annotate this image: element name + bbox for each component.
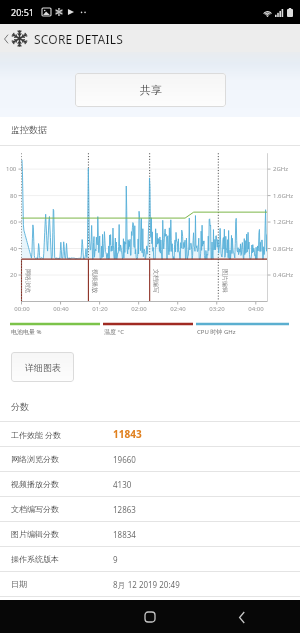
staticText: 00:40 — [53, 305, 69, 313]
staticText: 2GHz — [273, 165, 289, 173]
staticText: 00:00 — [14, 305, 30, 313]
staticText: 19660 — [113, 454, 136, 465]
staticText: 详细图表 — [25, 362, 61, 373]
staticText: 4130 — [113, 479, 132, 490]
button[interactable]: 工作效能 分数 — [0, 422, 300, 447]
staticText: 图片编辑分数 — [11, 529, 59, 539]
staticText: 监控数据 — [11, 124, 47, 135]
button[interactable]: 共享 — [75, 73, 226, 107]
button[interactable]: 文档编写分数 — [0, 497, 300, 522]
staticText: 9 — [113, 554, 118, 565]
staticText: 网络浏览分数 — [11, 454, 59, 464]
button[interactable]: 详细图表 — [11, 352, 74, 382]
staticText: 12863 — [113, 504, 136, 515]
staticText: 1.6GHz — [273, 192, 294, 200]
staticText: CPU 时钟 GHz — [197, 328, 236, 336]
staticText: 20 — [10, 271, 17, 279]
staticText: 分数 — [11, 401, 29, 412]
button[interactable]: Back — [229, 604, 255, 630]
staticText: 02:00 — [131, 305, 147, 313]
staticText: 温度 °C — [104, 328, 124, 336]
button[interactable]: 日期 — [0, 572, 300, 597]
staticText: 日期 — [11, 579, 27, 589]
button[interactable]: 视频播放分数 — [0, 472, 300, 497]
staticText: 01:20 — [92, 305, 108, 313]
staticText: 1.2GHz — [273, 218, 294, 226]
staticText: 04:00 — [248, 305, 264, 313]
staticText: 80 — [10, 192, 17, 200]
staticText: 0.4GHz — [273, 271, 294, 279]
button[interactable]: 图片编辑分数 — [0, 522, 300, 547]
button[interactable]: Home — [137, 604, 163, 630]
staticText: 0.8GHz — [273, 245, 294, 253]
staticText: 60 — [10, 218, 17, 226]
staticText: 20:51 — [11, 6, 35, 18]
button[interactable]: 操作系统版本 — [0, 547, 300, 572]
staticText: SCORE DETAILS — [34, 31, 124, 47]
staticText: 100 — [6, 165, 17, 173]
button[interactable]: Back — [3, 30, 124, 47]
staticText: 工作效能 分数 — [11, 429, 62, 440]
staticText: 视频播放分数 — [11, 479, 59, 489]
staticText: 02:40 — [170, 305, 186, 313]
staticText: 8月 12 2019 20:49 — [113, 579, 180, 590]
staticText: 文档编写分数 — [11, 504, 59, 514]
button[interactable]: 网络浏览分数 — [0, 447, 300, 472]
staticText: 03:20 — [209, 305, 225, 313]
staticText: 18834 — [113, 529, 136, 540]
staticText: 40 — [10, 245, 17, 253]
staticText: 电池电量 % — [11, 328, 42, 336]
staticText: 共享 — [140, 83, 162, 97]
staticText: 11843 — [113, 427, 142, 441]
staticText: 操作系统版本 — [11, 554, 59, 564]
